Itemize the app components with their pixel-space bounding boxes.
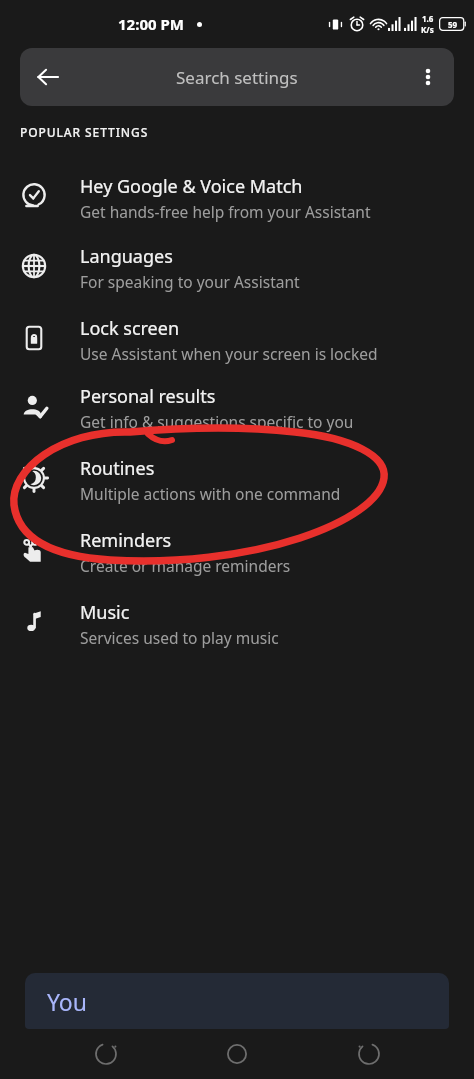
- staticText: Search settings: [176, 66, 298, 89]
- button[interactable]: Music: [0, 600, 474, 648]
- button[interactable]: Back: [36, 65, 60, 89]
- button[interactable]: Lock screen: [0, 316, 474, 364]
- staticText: Get info & suggestions specific to you: [80, 411, 354, 432]
- button[interactable]: Languages: [0, 244, 474, 292]
- staticText: 59: [448, 19, 458, 30]
- staticText: K/s: [421, 24, 434, 35]
- staticText: Get hands-free help from your Assistant: [80, 201, 371, 222]
- staticText: Lock screen: [80, 316, 180, 341]
- button[interactable]: More options: [418, 65, 438, 89]
- staticText: Languages: [80, 244, 173, 269]
- staticText: Multiple actions with one command: [80, 483, 341, 504]
- staticText: Music: [80, 600, 130, 625]
- staticText: Reminders: [80, 528, 172, 553]
- staticText: Routines: [80, 456, 155, 481]
- staticText: You: [47, 986, 87, 1017]
- staticText: 12:00 PM: [118, 14, 184, 34]
- staticText: Use Assistant when your screen is locked: [80, 343, 378, 364]
- staticText: Hey Google & Voice Match: [80, 174, 303, 199]
- button[interactable]: Home: [211, 1029, 263, 1079]
- button[interactable]: Personal results: [0, 384, 474, 432]
- staticText: Create or manage reminders: [80, 555, 291, 576]
- button[interactable]: Hey Google & Voice Match: [0, 174, 474, 222]
- button[interactable]: Routines: [0, 456, 474, 504]
- button[interactable]: Reminders: [0, 528, 474, 576]
- staticText: Personal results: [80, 384, 216, 409]
- button[interactable]: Back: [20, 48, 454, 106]
- staticText: For speaking to your Assistant: [80, 271, 300, 292]
- staticText: 1.6: [422, 13, 434, 24]
- button[interactable]: Recents: [343, 1029, 395, 1079]
- button[interactable]: You: [25, 973, 449, 1029]
- staticText: POPULAR SETTINGS: [20, 124, 149, 140]
- button[interactable]: Back: [80, 1029, 132, 1079]
- staticText: Services used to play music: [80, 627, 279, 648]
